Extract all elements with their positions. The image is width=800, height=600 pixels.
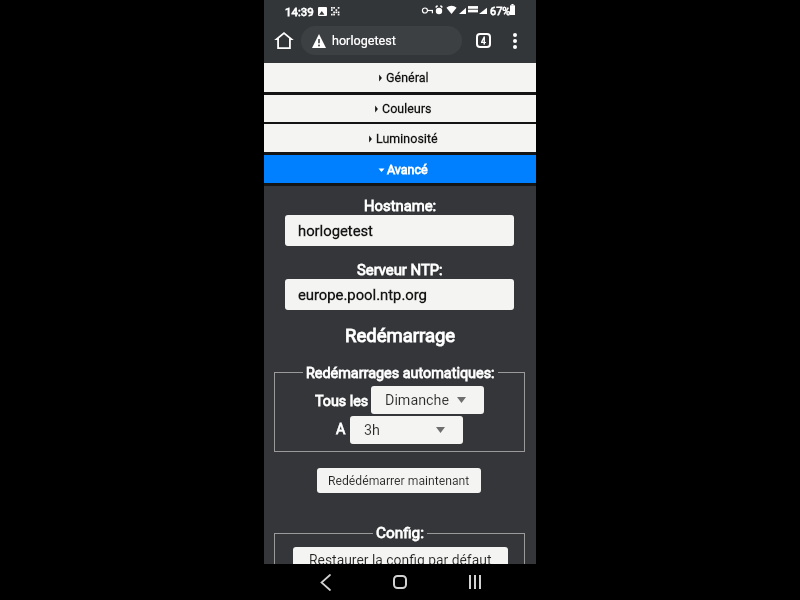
button[interactable]: Home xyxy=(272,29,295,52)
staticText: A xyxy=(336,421,346,438)
button[interactable]: horlogetest xyxy=(301,26,462,55)
staticText: Restaurer la config par défaut xyxy=(309,552,492,568)
button[interactable]: Avancé xyxy=(264,155,536,183)
staticText: 4 xyxy=(481,36,486,46)
staticText: 3h xyxy=(364,422,380,439)
button[interactable]: More options xyxy=(501,27,528,54)
staticText: Config: xyxy=(376,524,424,542)
button[interactable]: Restaurer la config par défaut xyxy=(293,547,508,572)
staticText: europe.pool.ntp.org xyxy=(298,286,427,303)
button[interactable]: Home xyxy=(383,565,417,599)
button[interactable]: Dimanche xyxy=(371,386,484,414)
button[interactable]: Luminosité xyxy=(264,124,536,152)
staticText: Dimanche xyxy=(385,392,450,409)
button[interactable]: Redédémarrer maintenant xyxy=(317,468,481,493)
button[interactable]: Back xyxy=(308,565,342,599)
staticText: Hostname: xyxy=(364,197,437,214)
staticText: Redédémarrer maintenant xyxy=(328,474,470,488)
staticText: Général xyxy=(386,70,429,85)
staticText: Redémarrages automatiques: xyxy=(306,365,495,382)
button[interactable]: Recent apps xyxy=(458,565,492,599)
staticText: Couleurs xyxy=(382,101,432,116)
staticText: Luminosité xyxy=(376,131,438,146)
button[interactable]: Open tabs xyxy=(470,27,497,54)
staticText: Serveur NTP: xyxy=(357,261,443,278)
button[interactable]: Couleurs xyxy=(264,95,536,122)
staticText: Redémarrage xyxy=(345,325,456,347)
button[interactable]: europe.pool.ntp.org xyxy=(285,279,514,310)
button[interactable]: 3h xyxy=(350,416,463,444)
button[interactable]: horlogetest xyxy=(285,215,514,246)
button[interactable]: Général xyxy=(264,63,536,92)
staticText: horlogetest xyxy=(332,33,396,48)
staticText: horlogetest xyxy=(298,222,373,239)
staticText: Tous les xyxy=(315,393,369,410)
staticText: Avancé xyxy=(387,162,428,177)
staticText: 67% xyxy=(490,5,511,18)
staticText: 14:39 xyxy=(285,5,314,18)
